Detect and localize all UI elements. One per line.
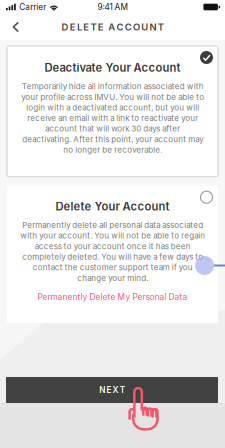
staticText: Permanently delete all personal data ass… xyxy=(20,220,205,283)
staticText: Temporarily hide all information associa… xyxy=(21,82,204,155)
staticText: Permanently Delete My Personal Data xyxy=(37,292,187,302)
staticText: 9:41 AM xyxy=(97,2,127,12)
button[interactable]: Permanently Delete My Personal Data xyxy=(7,283,218,323)
staticText: Delete Your Account xyxy=(55,200,169,213)
button[interactable]: Deactivate Your Account xyxy=(7,46,218,177)
button[interactable]: Back xyxy=(0,14,32,40)
button[interactable]: NEXT xyxy=(6,377,218,403)
staticText: Deactivate Your Account xyxy=(44,61,180,75)
button[interactable]: Delete Your Account xyxy=(7,186,218,323)
staticText: Carrier xyxy=(19,2,46,12)
staticText: NEXT xyxy=(99,385,125,395)
staticText: DELETE ACCOUNT xyxy=(61,21,164,33)
